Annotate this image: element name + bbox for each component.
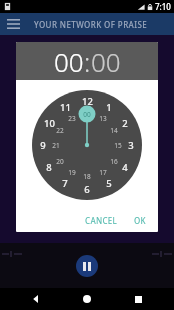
staticText: 7:10 — [155, 1, 171, 12]
staticText: 15 — [114, 141, 122, 150]
staticText: CANCEL — [85, 215, 118, 226]
staticText: 22 — [56, 126, 64, 135]
staticText: 7 — [62, 177, 68, 190]
staticText: 5 — [106, 177, 112, 190]
staticText: 17 — [99, 168, 107, 177]
button[interactable]: 00 — [54, 44, 84, 79]
staticText: 11 — [60, 101, 71, 114]
staticText: 2 — [122, 117, 128, 130]
staticText: : — [84, 44, 91, 79]
staticText: YOUR NETWORK OF PRAISE — [34, 19, 148, 30]
staticText: 13 — [99, 114, 107, 123]
staticText: 8 — [46, 161, 52, 174]
staticText: 1 — [106, 101, 112, 114]
staticText: 4 — [122, 161, 128, 174]
staticText: 3 — [128, 139, 134, 152]
button[interactable]: Pause — [76, 255, 98, 277]
staticText: 18 — [83, 172, 91, 181]
staticText: OK — [134, 215, 146, 226]
button[interactable]: CANCEL — [79, 211, 124, 230]
staticText: 19 — [68, 168, 76, 177]
staticText: 6 — [84, 183, 90, 196]
button[interactable]: Back — [21, 288, 51, 310]
staticText: 10 — [44, 117, 55, 130]
staticText: 23 — [68, 114, 76, 123]
staticText: 12 — [82, 95, 93, 108]
staticText: 00 — [83, 110, 91, 119]
staticText: 16 — [110, 157, 118, 166]
staticText: 21 — [52, 141, 60, 150]
button[interactable]: OK — [128, 211, 152, 230]
button[interactable]: Select hour — [32, 90, 142, 200]
staticText: 9 — [40, 139, 46, 152]
staticText: 20 — [56, 157, 64, 166]
button[interactable]: Open navigation menu — [4, 15, 22, 33]
staticText: 14 — [110, 126, 118, 135]
button[interactable]: Home — [72, 288, 102, 310]
button[interactable]: 00 — [91, 44, 121, 79]
button[interactable]: Recent apps — [123, 288, 153, 310]
